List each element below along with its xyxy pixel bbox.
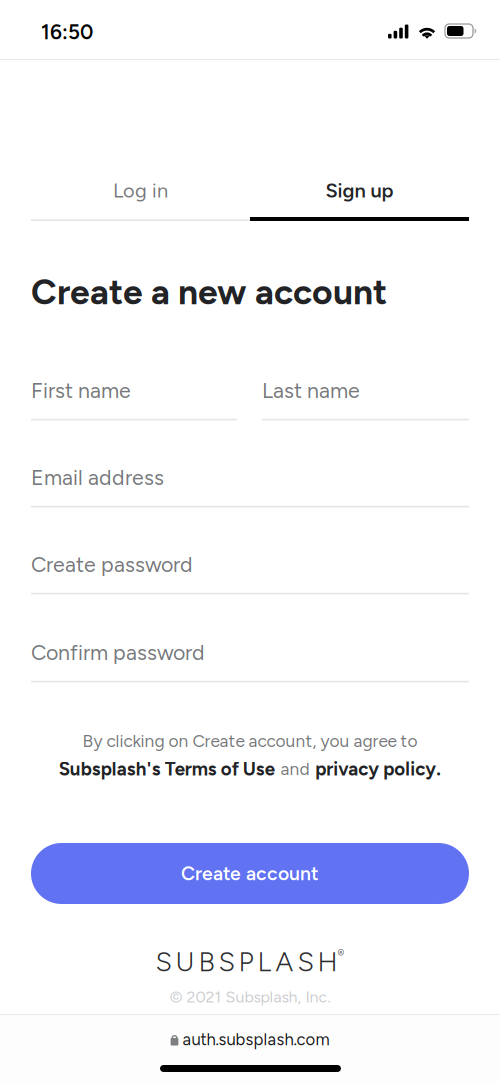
button[interactable]: Confirm password [31,635,469,682]
staticText: ® [337,947,344,960]
staticText: Confirm password [31,640,205,665]
button[interactable]: Subsplash's Terms of Use [59,758,275,780]
button[interactable]: privacy policy [315,758,436,780]
button[interactable]: Create account [31,843,469,904]
staticText: . [436,758,441,780]
button[interactable]: Create password [31,547,469,594]
button[interactable]: Sign up [250,158,469,221]
staticText: Log in [113,178,168,202]
staticText: Create a new account [31,271,387,313]
staticText: Subsplash's Terms of Use [59,758,275,780]
staticText: First name [31,378,131,403]
button[interactable]: Last name [262,373,469,420]
staticText: By clicking on Create account, you agree… [82,731,417,751]
staticText: © 2021 Subsplash, Inc. [169,987,330,1007]
staticText: auth.subsplash.com [182,1029,329,1049]
button[interactable]: Email address [31,460,469,507]
staticText: Last name [262,378,360,403]
staticText: privacy policy [315,758,436,780]
staticText: SUBSPLASH [155,946,337,978]
staticText: 16:50 [41,20,93,44]
button[interactable]: First name [31,373,237,420]
staticText: Sign up [325,178,393,202]
button[interactable]: auth.subsplash.com [171,1029,329,1049]
button[interactable]: Log in [31,158,250,221]
staticText: Create account [181,862,319,885]
staticText: Email address [31,465,164,490]
staticText: Create password [31,552,193,577]
staticText: and [276,759,313,779]
